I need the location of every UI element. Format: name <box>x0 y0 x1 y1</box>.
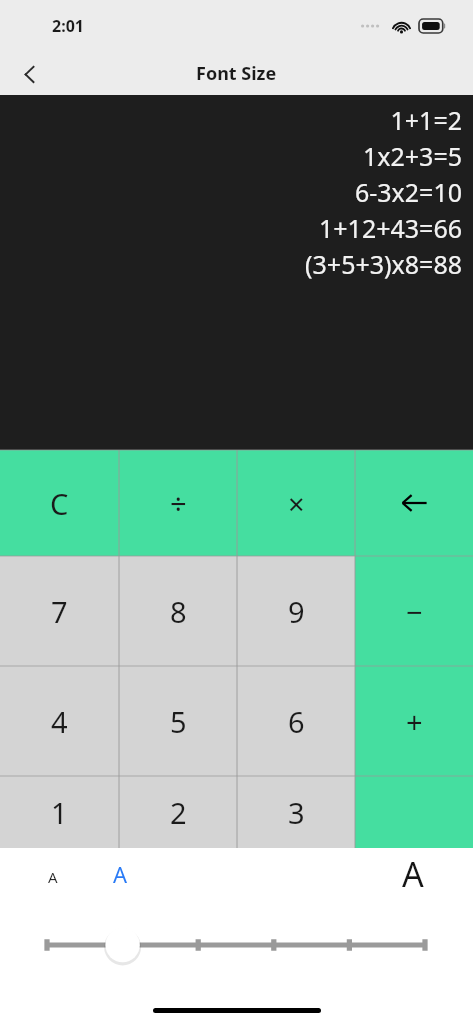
staticText: A <box>48 867 58 887</box>
button[interactable]: × <box>237 450 355 556</box>
staticText: 3 <box>288 793 305 832</box>
button[interactable]: 4 <box>0 666 119 776</box>
staticText: ÷ <box>170 484 187 523</box>
staticText: A <box>402 851 424 897</box>
button[interactable]: A <box>102 856 138 892</box>
staticText: 6 <box>288 702 305 741</box>
staticText: × <box>288 484 305 523</box>
button[interactable]: 6 <box>237 666 355 776</box>
button[interactable] <box>355 776 473 848</box>
staticText: 7 <box>51 592 68 631</box>
staticText: 1+12+43=66 <box>318 211 462 245</box>
staticText: 6-3x2=10 <box>354 175 462 209</box>
staticText: 1 <box>51 793 68 832</box>
button[interactable]: Backspace <box>355 450 473 556</box>
staticText: (3+5+3)x8=88 <box>305 247 462 281</box>
staticText: 8 <box>170 592 187 631</box>
button[interactable]: 1 <box>0 776 119 848</box>
staticText: 2 <box>170 793 187 832</box>
staticText: 4 <box>51 702 68 741</box>
staticText: C <box>50 484 69 523</box>
staticText: A <box>113 859 128 889</box>
staticText: 9 <box>288 592 305 631</box>
button[interactable]: 5 <box>119 666 237 776</box>
button[interactable]: − <box>355 556 473 666</box>
staticText: 1x2+3=5 <box>362 139 462 173</box>
button[interactable]: Back <box>6 52 54 95</box>
button[interactable]: ÷ <box>119 450 237 556</box>
button[interactable]: A <box>38 862 68 892</box>
staticText: 1+1=2 <box>390 103 462 137</box>
button[interactable]: Font size slider <box>0 920 473 970</box>
button[interactable]: 8 <box>119 556 237 666</box>
staticText: Font Size <box>196 61 277 86</box>
button[interactable]: C <box>0 450 119 556</box>
staticText: 5 <box>170 702 187 741</box>
staticText: 2:01 <box>52 15 84 37</box>
button[interactable]: + <box>355 666 473 776</box>
button[interactable]: 7 <box>0 556 119 666</box>
button[interactable]: A <box>389 850 437 898</box>
staticText: + <box>406 702 423 741</box>
staticText: − <box>406 592 423 631</box>
button[interactable]: 9 <box>237 556 355 666</box>
button[interactable]: 2 <box>119 776 237 848</box>
button[interactable]: 3 <box>237 776 355 848</box>
